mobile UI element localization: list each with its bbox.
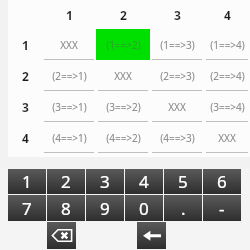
staticText: (2==>1) [52, 69, 87, 83]
button[interactable]: 1 [8, 169, 46, 194]
staticText: (1==>2) [106, 38, 141, 52]
staticText: (4==>2) [106, 131, 141, 145]
button[interactable]: (2==>1) [42, 60, 96, 91]
button[interactable]: XXX [204, 122, 250, 153]
staticText: . [181, 197, 186, 220]
staticText: (2==>4) [210, 69, 245, 83]
staticText: 2 [22, 68, 29, 84]
staticText: (3==>2) [106, 100, 141, 114]
staticText: - [219, 197, 225, 220]
button[interactable]: (3==>2) [96, 91, 150, 122]
button[interactable]: 3 [86, 169, 124, 194]
staticText: (4==>1) [52, 131, 87, 145]
staticText: 6 [217, 170, 227, 193]
button[interactable]: XXX [150, 91, 204, 122]
staticText: XXX [114, 69, 132, 83]
button[interactable]: (2==>4) [204, 60, 250, 91]
staticText: 1 [22, 37, 29, 53]
button[interactable]: - [203, 195, 241, 221]
staticText: XXX [60, 38, 78, 52]
staticText: (3==>4) [210, 100, 245, 114]
button[interactable]: (4==>3) [150, 122, 204, 153]
button[interactable]: (4==>2) [96, 122, 150, 153]
staticText: 3 [100, 170, 110, 193]
button[interactable]: (1==>3) [150, 29, 204, 60]
staticText: XXX [168, 100, 186, 114]
staticText: 4 [22, 130, 29, 146]
staticText: XXX [218, 131, 236, 145]
button[interactable]: XXX [96, 60, 150, 91]
staticText: 5 [178, 170, 188, 193]
button[interactable]: 8 [47, 195, 85, 221]
staticText: (1==>3) [160, 38, 195, 52]
button[interactable]: (1==>4) [204, 29, 250, 60]
staticText: 2 [120, 7, 127, 23]
button[interactable]: Backspace [47, 222, 76, 249]
button[interactable]: . [164, 195, 202, 221]
staticText: (3==>1) [52, 100, 87, 114]
staticText: 7 [22, 197, 32, 220]
button[interactable]: 5 [164, 169, 202, 194]
button[interactable]: 6 [203, 169, 241, 194]
staticText: 3 [174, 7, 181, 23]
button[interactable]: (3==>1) [42, 91, 96, 122]
staticText: 4 [224, 7, 231, 23]
staticText: 2 [61, 170, 71, 193]
button[interactable]: 9 [86, 195, 124, 221]
staticText: 1 [22, 170, 32, 193]
button[interactable]: (1==>2) [96, 29, 150, 60]
button[interactable]: 7 [8, 195, 46, 221]
button[interactable]: Enter [137, 222, 166, 249]
staticText: (4==>3) [160, 131, 195, 145]
staticText: 9 [100, 197, 110, 220]
button[interactable]: (4==>1) [42, 122, 96, 153]
staticText: 1 [66, 7, 73, 23]
button[interactable]: (3==>4) [204, 91, 250, 122]
staticText: 4 [139, 170, 149, 193]
button[interactable]: 2 [47, 169, 85, 194]
button[interactable]: 4 [125, 169, 163, 194]
button[interactable]: 0 [125, 195, 163, 221]
button[interactable]: XXX [42, 29, 96, 60]
staticText: 8 [61, 197, 71, 220]
staticText: (1==>4) [210, 38, 245, 52]
button[interactable]: (2==>3) [150, 60, 204, 91]
staticText: (2==>3) [160, 69, 195, 83]
staticText: 3 [22, 99, 29, 115]
staticText: 0 [139, 197, 149, 220]
